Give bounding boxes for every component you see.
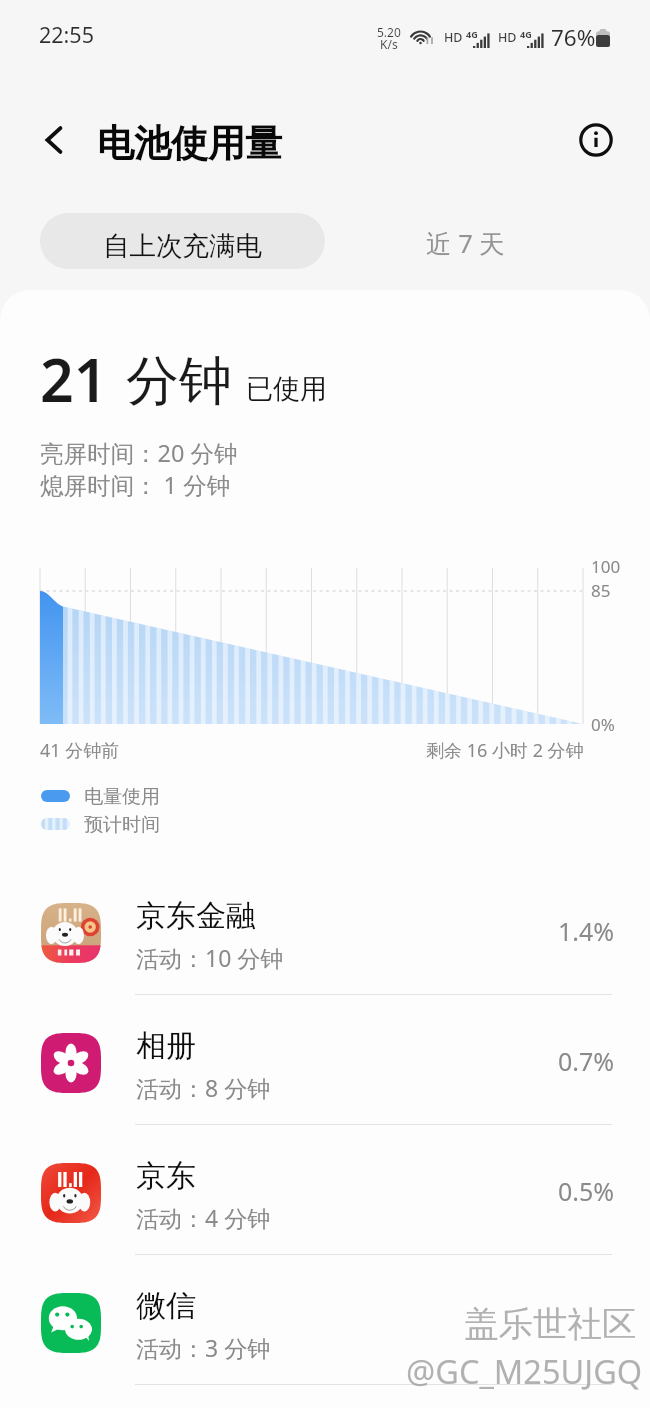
staticText: 5.20 xyxy=(377,24,401,40)
staticText: 22:55 xyxy=(39,20,94,49)
staticText: 0% xyxy=(591,713,615,736)
staticText: 预计时间 xyxy=(84,813,160,837)
staticText: 分钟 xyxy=(126,348,232,415)
staticText: 熄屏时间： 1 分钟 xyxy=(40,469,231,501)
staticText: 活动：8 分钟 xyxy=(136,1072,271,1103)
staticText: 已使用 xyxy=(246,372,327,406)
button[interactable]: 近 7 天 xyxy=(385,213,550,269)
button[interactable]: 微信 xyxy=(0,1254,650,1384)
staticText: 21 xyxy=(40,339,108,419)
staticText: 4G xyxy=(466,28,478,40)
staticText: K/s xyxy=(380,36,398,52)
staticText: 1.4% xyxy=(558,914,615,948)
staticText: 76% xyxy=(551,22,596,53)
staticText: 0.7% xyxy=(558,1044,615,1078)
staticText: 活动：4 分钟 xyxy=(136,1202,271,1233)
staticText: 自上次充满电 xyxy=(103,229,262,262)
button[interactable]: 京东 xyxy=(0,1124,650,1254)
button[interactable]: Back xyxy=(28,113,82,167)
staticText: 京东 xyxy=(136,1157,196,1195)
button[interactable]: 京东金融 xyxy=(0,864,650,994)
staticText: 近 7 天 xyxy=(426,226,505,261)
staticText: 85 xyxy=(591,579,611,602)
staticText: HD xyxy=(498,29,517,46)
staticText: HD xyxy=(444,29,463,46)
button[interactable]: Information xyxy=(572,116,620,164)
staticText: 4G xyxy=(520,28,532,40)
staticText: 微信 xyxy=(136,1287,196,1325)
staticText: 电池使用量 xyxy=(97,120,282,167)
staticText: 41 分钟前 xyxy=(40,738,120,763)
staticText: 盖乐世社区 xyxy=(464,1303,637,1346)
staticText: 亮屏时间：20 分钟 xyxy=(40,437,238,469)
staticText: 活动：10 分钟 xyxy=(136,942,284,973)
button[interactable]: 相册 xyxy=(0,994,650,1124)
button[interactable]: 自上次充满电 xyxy=(40,213,325,269)
staticText: 电量使用 xyxy=(84,785,160,809)
staticText: 剩余 16 小时 2 分钟 xyxy=(426,738,584,763)
staticText: @GC_M25UJGQ xyxy=(406,1349,643,1393)
staticText: 相册 xyxy=(136,1027,196,1065)
staticText: 京东金融 xyxy=(136,897,256,935)
staticText: 活动：3 分钟 xyxy=(136,1332,271,1363)
staticText: 100 xyxy=(591,555,621,578)
staticText: 0.5% xyxy=(558,1174,615,1208)
